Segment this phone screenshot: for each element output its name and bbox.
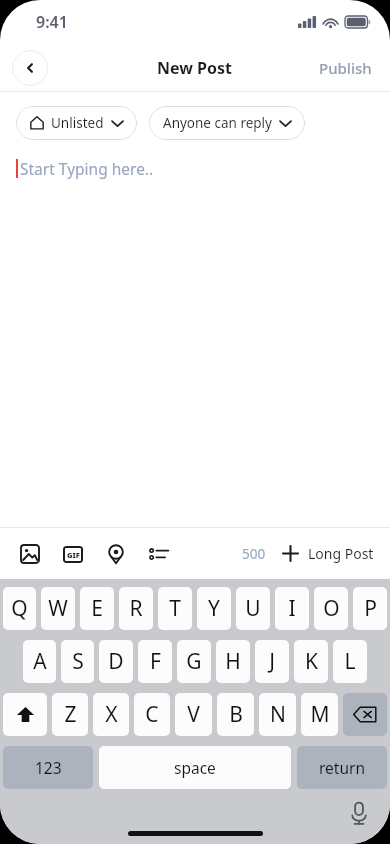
staticText: S <box>72 647 84 676</box>
button[interactable]: A <box>23 640 56 683</box>
staticText: U <box>245 594 261 623</box>
button[interactable]: T <box>158 587 192 630</box>
staticText: return <box>319 757 365 778</box>
staticText: R <box>129 594 143 623</box>
button[interactable]: M <box>301 693 338 736</box>
staticText: Unlisted <box>51 114 104 132</box>
staticText: P <box>364 594 377 623</box>
staticText: 500 <box>242 545 266 563</box>
staticText: E <box>91 594 103 623</box>
button[interactable]: D <box>99 640 133 683</box>
staticText: GIF <box>67 550 80 560</box>
button[interactable]: V <box>175 693 212 736</box>
staticText: T <box>169 594 181 623</box>
staticText: D <box>108 647 124 676</box>
staticText: A <box>33 647 47 676</box>
button[interactable]: Anyone can reply <box>149 106 305 140</box>
button[interactable]: Long Post <box>283 544 374 563</box>
staticText: I <box>288 594 296 623</box>
button[interactable]: I <box>275 587 309 630</box>
staticText: 9:41 <box>36 11 68 33</box>
staticText: V <box>187 700 200 729</box>
button[interactable]: Add poll <box>147 542 171 566</box>
button[interactable]: L <box>333 640 367 683</box>
button[interactable]: Add location <box>104 542 128 566</box>
staticText: H <box>225 647 241 676</box>
button[interactable]: Z <box>52 693 88 736</box>
staticText: N <box>270 700 286 729</box>
button[interactable]: J <box>255 640 289 683</box>
staticText: space <box>174 757 216 778</box>
staticText: B <box>229 700 243 729</box>
staticText: 123 <box>35 757 62 778</box>
staticText: M <box>310 700 330 729</box>
button[interactable]: S <box>61 640 94 683</box>
button[interactable]: Add GIF <box>61 542 85 566</box>
staticText: Anyone can reply <box>163 114 272 132</box>
button[interactable]: P <box>353 587 387 630</box>
button[interactable]: Back <box>12 50 48 86</box>
button[interactable]: B <box>217 693 254 736</box>
staticText: J <box>269 647 275 676</box>
staticText: Z <box>64 700 77 729</box>
button[interactable]: X <box>93 693 129 736</box>
staticText: Publish <box>319 58 372 78</box>
button[interactable]: Shift <box>3 693 47 736</box>
staticText: Start Typing here.. <box>20 158 154 179</box>
button[interactable]: 123 <box>3 746 93 789</box>
button[interactable]: C <box>134 693 170 736</box>
button[interactable]: R <box>119 587 153 630</box>
button[interactable]: return <box>297 746 387 789</box>
button[interactable]: Q <box>3 587 36 630</box>
button[interactable]: Y <box>197 587 231 630</box>
staticText: Q <box>11 594 28 623</box>
button[interactable]: U <box>236 587 270 630</box>
button[interactable]: E <box>80 587 114 630</box>
button[interactable]: Unlisted <box>16 106 137 140</box>
staticText: Y <box>208 594 220 623</box>
button[interactable]: N <box>259 693 296 736</box>
button[interactable]: O <box>314 587 348 630</box>
button[interactable]: Add image <box>18 542 42 566</box>
button[interactable]: Publish <box>301 48 390 88</box>
button[interactable]: H <box>216 640 250 683</box>
staticText: O <box>323 594 340 623</box>
button[interactable]: K <box>294 640 328 683</box>
staticText: W <box>48 594 68 623</box>
staticText: C <box>145 700 159 729</box>
staticText: L <box>344 647 356 676</box>
staticText: G <box>186 647 202 676</box>
staticText: Long Post <box>308 544 374 563</box>
button[interactable]: W <box>41 587 75 630</box>
staticText: X <box>105 700 118 729</box>
button[interactable]: Dictation <box>346 800 372 826</box>
button[interactable]: Backspace <box>343 693 387 736</box>
button[interactable]: space <box>99 746 291 789</box>
staticText: K <box>305 647 318 676</box>
staticText: New Post <box>157 57 233 79</box>
button[interactable]: G <box>177 640 211 683</box>
staticText: F <box>150 647 161 676</box>
button[interactable]: F <box>138 640 172 683</box>
